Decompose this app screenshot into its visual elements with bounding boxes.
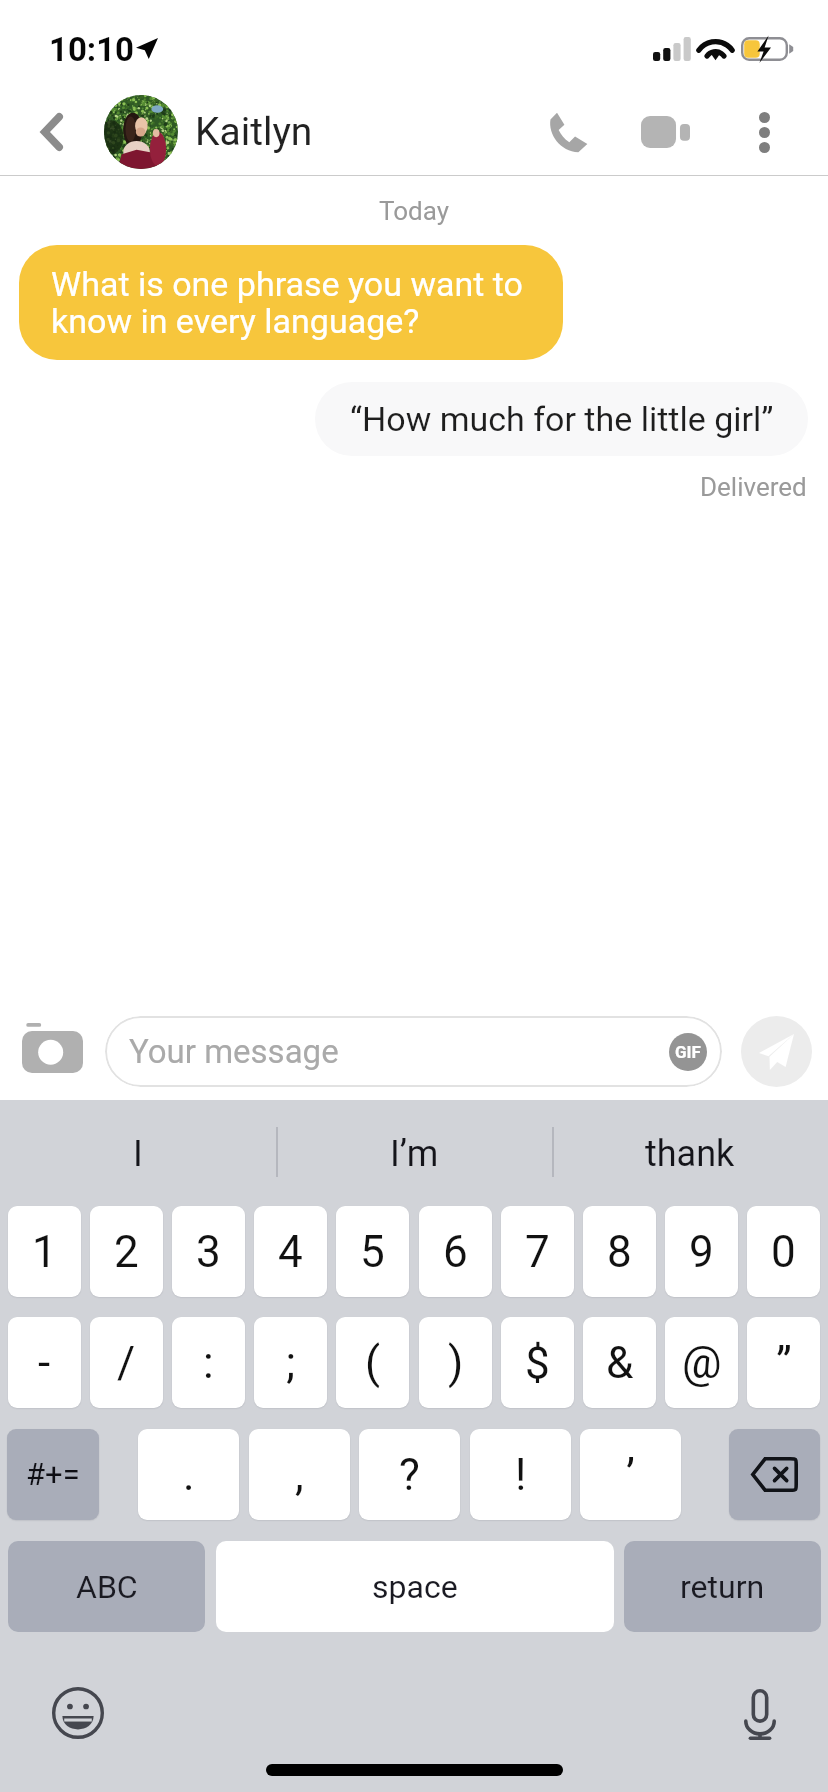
button[interactable]: ) — [419, 1317, 492, 1408]
button[interactable]: $ — [501, 1317, 574, 1408]
staticText: : — [203, 1337, 214, 1389]
staticText: , — [295, 1449, 304, 1501]
staticText: ’ — [626, 1449, 635, 1501]
staticText: 8 — [607, 1226, 632, 1278]
button[interactable]: Dictate — [724, 1678, 796, 1750]
button[interactable]: @ — [665, 1317, 738, 1408]
button[interactable]: 1 — [8, 1206, 81, 1297]
staticText: @ — [682, 1337, 722, 1389]
button[interactable]: thank — [552, 1100, 828, 1198]
button[interactable]: #+= — [7, 1429, 99, 1520]
staticText: 6 — [443, 1226, 468, 1278]
button[interactable]: - — [8, 1317, 81, 1408]
staticText: $ — [525, 1337, 550, 1389]
button[interactable]: Your message — [105, 1016, 722, 1087]
button[interactable]: Camera — [13, 1009, 91, 1087]
button[interactable]: GIF — [669, 1033, 707, 1071]
button[interactable]: 6 — [419, 1206, 492, 1297]
staticText: Your message — [129, 1032, 339, 1071]
button[interactable]: space — [216, 1541, 614, 1632]
staticText: 1 — [32, 1226, 57, 1278]
button[interactable]: Video call — [622, 89, 708, 175]
button[interactable]: 9 — [665, 1206, 738, 1297]
staticText: space — [372, 1568, 458, 1606]
button[interactable]: , — [249, 1429, 350, 1520]
button[interactable]: 5 — [336, 1206, 409, 1297]
button[interactable]: Send — [741, 1016, 812, 1087]
staticText: ? — [399, 1449, 420, 1501]
staticText: Today — [379, 196, 450, 227]
staticText: ) — [448, 1337, 464, 1389]
button[interactable]: 0 — [747, 1206, 820, 1297]
button[interactable]: Back — [14, 94, 90, 170]
button[interactable]: . — [138, 1429, 239, 1520]
staticText: #+= — [26, 1456, 80, 1493]
staticText: 9 — [689, 1226, 714, 1278]
staticText: ; — [286, 1337, 296, 1389]
staticText: GIF — [675, 1042, 701, 1062]
button[interactable]: ” — [747, 1317, 820, 1408]
button[interactable]: Kaitlyn — [104, 95, 313, 169]
staticText: / — [117, 1337, 136, 1389]
button[interactable]: 8 — [583, 1206, 656, 1297]
staticText: ” — [776, 1337, 792, 1389]
staticText: . — [183, 1449, 195, 1501]
button[interactable]: Call — [525, 89, 611, 175]
staticText: & — [606, 1337, 634, 1389]
staticText: ! — [515, 1449, 527, 1501]
button[interactable]: / — [90, 1317, 163, 1408]
button[interactable]: I — [0, 1100, 276, 1198]
staticText: - — [38, 1337, 51, 1389]
staticText: 5 — [360, 1226, 385, 1278]
staticText: 7 — [525, 1226, 550, 1278]
button[interactable]: 3 — [172, 1206, 245, 1297]
button[interactable]: I’m — [276, 1100, 552, 1198]
button[interactable]: 7 — [501, 1206, 574, 1297]
button[interactable]: : — [172, 1317, 245, 1408]
staticText: Delivered — [700, 472, 807, 503]
button[interactable]: ’ — [580, 1429, 681, 1520]
button[interactable]: What is one phrase you want to know in e… — [19, 245, 563, 360]
button[interactable]: 4 — [254, 1206, 327, 1297]
staticText: 10:10 — [49, 30, 135, 69]
staticText: ( — [365, 1337, 381, 1389]
button[interactable]: Emoji — [42, 1677, 114, 1749]
staticText: What is one phrase you want to know in e… — [51, 267, 523, 341]
staticText: Kaitlyn — [195, 109, 313, 155]
button[interactable]: return — [624, 1541, 821, 1632]
button[interactable]: & — [583, 1317, 656, 1408]
button[interactable]: Backspace — [729, 1429, 820, 1520]
staticText: ABC — [76, 1568, 138, 1606]
staticText: “How much for the little girl” — [350, 399, 774, 439]
button[interactable]: More options — [721, 89, 807, 175]
staticText: 3 — [196, 1226, 221, 1278]
staticText: 4 — [278, 1226, 303, 1278]
button[interactable]: ( — [336, 1317, 409, 1408]
staticText: I’m — [390, 1132, 439, 1174]
button[interactable]: ? — [359, 1429, 460, 1520]
staticText: return — [680, 1568, 765, 1606]
staticText: 0 — [771, 1226, 796, 1278]
button[interactable]: ABC — [8, 1541, 205, 1632]
button[interactable]: 2 — [90, 1206, 163, 1297]
staticText: I — [133, 1132, 143, 1174]
button[interactable]: “How much for the little girl” — [315, 382, 808, 456]
staticText: 2 — [114, 1226, 139, 1278]
button[interactable]: ; — [254, 1317, 327, 1408]
button[interactable]: ! — [470, 1429, 571, 1520]
staticText: thank — [645, 1132, 735, 1174]
